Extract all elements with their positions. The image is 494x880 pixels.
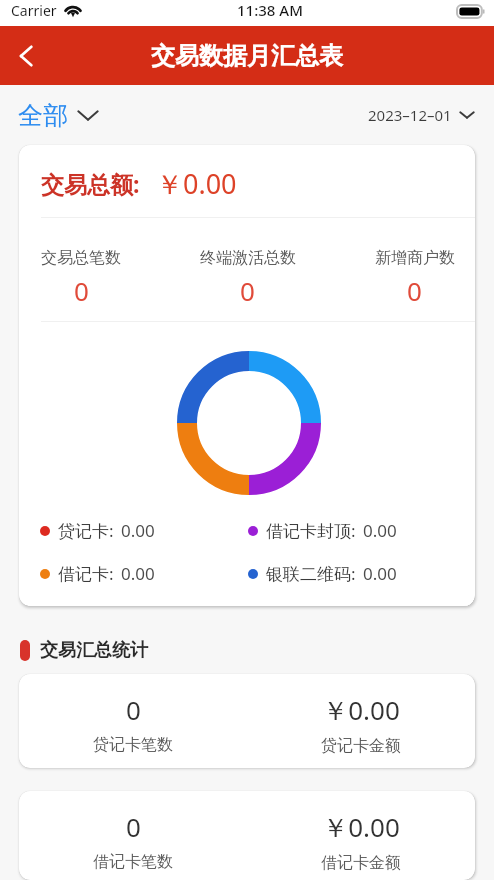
staticText: 0.00 [363, 519, 397, 542]
staticText: 交易总笔数 [41, 248, 121, 268]
staticText: 交易汇总统计 [40, 639, 148, 662]
staticText: 借记卡笔数 [93, 852, 173, 872]
staticText: 0 [407, 273, 422, 308]
staticText: 交易总额: [41, 168, 140, 199]
staticText: 0.00 [121, 519, 155, 542]
button[interactable]: 全部 [18, 100, 99, 131]
button[interactable]: Back [0, 30, 52, 82]
staticText: 借记卡金额 [321, 853, 401, 873]
staticText: 0 [240, 273, 255, 308]
staticText: 0 [126, 809, 141, 844]
staticText: 交易数据月汇总表 [151, 41, 343, 71]
staticText: 0.00 [363, 562, 397, 585]
staticText: 0 [74, 273, 89, 308]
staticText: 借记卡: [58, 562, 114, 585]
button[interactable]: 2023–12–01 [368, 105, 475, 125]
staticText: ￥0.00 [156, 165, 237, 202]
staticText: 贷记卡: [58, 519, 114, 542]
staticText: 新增商户数 [375, 248, 455, 268]
staticText: Carrier [11, 1, 57, 20]
staticText: ￥0.00 [322, 809, 400, 845]
staticText: 2023–12–01 [368, 105, 452, 125]
button[interactable]: 0 [19, 674, 475, 768]
staticText: 0 [126, 692, 141, 727]
staticText: 终端激活总数 [200, 248, 296, 268]
staticText: 借记卡封顶: [266, 519, 356, 542]
staticText: 贷记卡金额 [321, 736, 401, 756]
button[interactable]: 0 [19, 791, 475, 880]
staticText: 0.00 [121, 562, 155, 585]
staticText: 贷记卡笔数 [93, 735, 173, 755]
staticText: ￥0.00 [322, 692, 400, 728]
staticText: 全部 [18, 100, 68, 131]
staticText: 银联二维码: [266, 562, 356, 585]
staticText: 11:38 AM [237, 0, 303, 20]
